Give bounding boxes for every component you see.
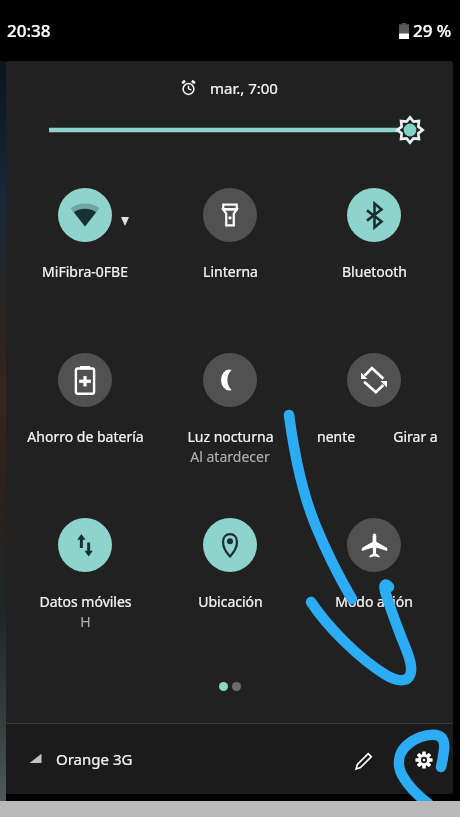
button[interactable]: Brillo bbox=[6, 108, 453, 152]
staticText: Ahorro de batería bbox=[27, 427, 144, 446]
staticText: MiFibra-0FBE bbox=[42, 262, 128, 281]
staticText: H bbox=[80, 612, 91, 631]
staticText: Luz nocturna bbox=[187, 427, 274, 446]
staticText: 20:38 bbox=[7, 19, 51, 42]
button[interactable]: Ajustes bbox=[402, 738, 446, 782]
staticText: Girar a bbox=[393, 427, 438, 446]
staticText: Datos móviles bbox=[39, 592, 132, 611]
staticText: nente bbox=[317, 427, 356, 446]
button[interactable] bbox=[158, 347, 302, 443]
button[interactable] bbox=[158, 512, 302, 608]
staticText: 29 % bbox=[413, 19, 452, 42]
button[interactable] bbox=[302, 512, 446, 608]
button[interactable] bbox=[13, 512, 157, 608]
button[interactable] bbox=[343, 347, 453, 443]
staticText: Modo avión bbox=[335, 592, 413, 611]
button[interactable]: Editar bbox=[342, 739, 386, 783]
button[interactable] bbox=[13, 347, 157, 443]
staticText: Ubicación bbox=[198, 592, 263, 611]
button[interactable] bbox=[13, 182, 157, 278]
staticText: Orange 3G bbox=[56, 749, 133, 769]
button[interactable] bbox=[302, 182, 446, 278]
staticText: Linterna bbox=[203, 262, 258, 281]
staticText: Bluetooth bbox=[342, 262, 407, 281]
staticText: Al atardecer bbox=[190, 447, 270, 466]
button[interactable] bbox=[158, 182, 302, 278]
staticText: mar., 7:00 bbox=[210, 78, 278, 96]
